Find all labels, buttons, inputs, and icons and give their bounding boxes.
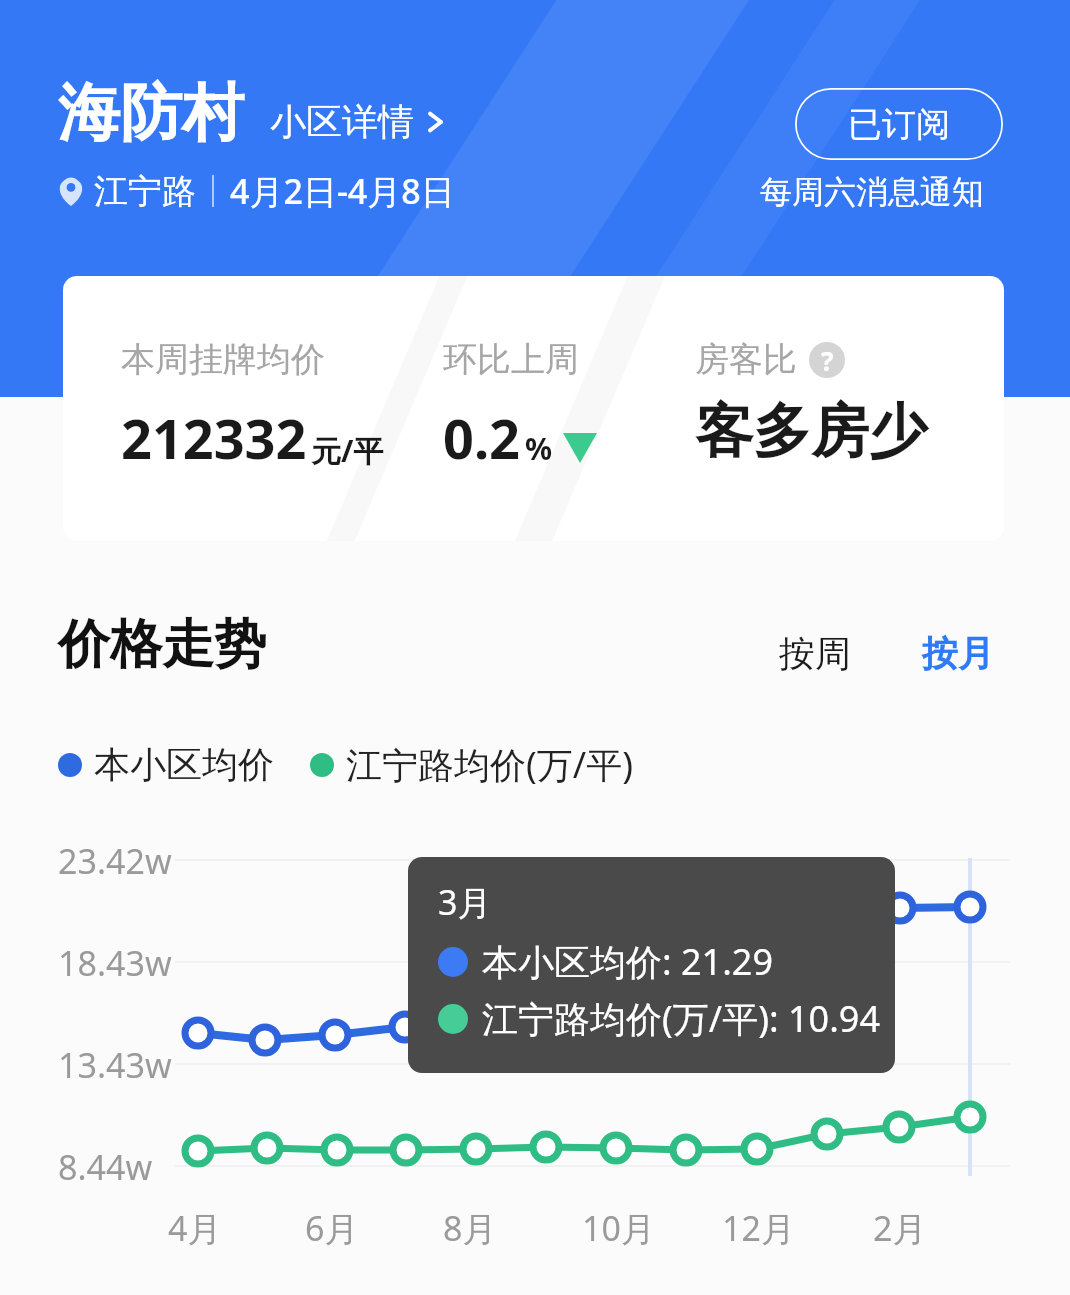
staticText: 海防村 [58,74,244,152]
staticText: 环比上周 [443,338,579,381]
staticText: 房客比 [695,338,797,381]
staticText: 元/平 [311,430,384,471]
button[interactable]: 按月 [908,625,1008,682]
button[interactable]: 本周挂牌均价 [63,276,1004,541]
staticText: 江宁路均价(万/平): 10.94 [482,994,881,1043]
staticText: 已订阅 [848,103,950,146]
staticText: 10月 [582,1205,655,1251]
button[interactable]: 海防村 [58,74,446,152]
staticText: 2月 [873,1205,927,1251]
staticText: 8.44w [58,1144,153,1190]
staticText: 0.2 [443,401,520,475]
staticText: 小区详情 [270,99,414,144]
staticText: 6月 [305,1205,359,1251]
staticText: 3月 [438,879,492,925]
staticText: 4月2日-4月8日 [230,168,455,214]
staticText: % [525,428,553,469]
staticText: 每周六消息通知 [760,172,984,212]
staticText: 13.43w [58,1042,172,1088]
staticText: 本小区均价: 21.29 [482,937,774,986]
staticText: 8月 [443,1205,497,1251]
staticText: 按月 [922,631,994,676]
staticText: 价格走势 [58,612,266,678]
staticText: 江宁路均价(万/平) [346,740,633,789]
staticText: 江宁路 [94,170,196,213]
staticText: 23.42w [58,838,172,884]
button[interactable]: 已订阅 [795,88,1003,160]
staticText: 本周挂牌均价 [121,338,325,381]
button[interactable]: 按周 [765,625,865,682]
staticText: ? [821,343,834,378]
staticText: 4月 [168,1205,222,1251]
button[interactable]: 房客比说明 [809,342,845,378]
staticText: 12月 [722,1205,795,1251]
staticText: 按周 [779,631,851,676]
staticText: 18.43w [58,940,172,986]
staticText: 212332 [121,401,307,475]
staticText: 客多房少 [695,395,927,468]
staticText: 本小区均价 [94,742,274,787]
